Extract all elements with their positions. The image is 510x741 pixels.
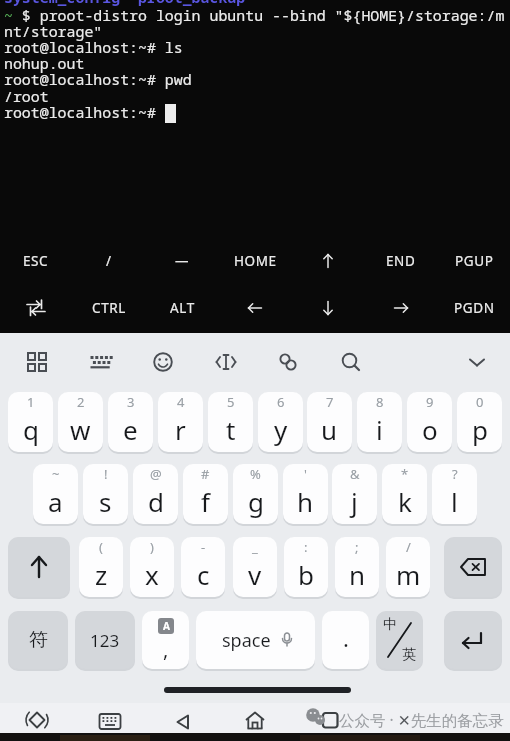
button[interactable]: 1: [8, 392, 53, 452]
button[interactable]: [444, 611, 502, 669]
staticText: v: [248, 557, 262, 592]
button[interactable]: [242, 708, 268, 734]
button[interactable]: 0: [457, 392, 502, 452]
button[interactable]: [463, 348, 491, 376]
button[interactable]: 9: [407, 392, 452, 452]
staticText: %: [250, 465, 261, 483]
button[interactable]: ALT: [146, 285, 218, 331]
button[interactable]: 8: [357, 392, 402, 452]
staticText: e: [123, 412, 138, 447]
button[interactable]: [149, 348, 177, 376]
button[interactable]: !: [83, 464, 128, 524]
button[interactable]: [8, 537, 70, 597]
staticText: x: [145, 557, 159, 592]
button[interactable]: .: [322, 611, 369, 669]
button[interactable]: ―: [146, 238, 218, 284]
staticText: 7: [326, 393, 334, 411]
button[interactable]: HOME: [219, 238, 291, 284]
button[interactable]: [303, 704, 329, 730]
staticText: ?: [452, 465, 458, 483]
button[interactable]: _: [233, 537, 277, 597]
button[interactable]: [97, 708, 123, 734]
button[interactable]: 符: [8, 611, 68, 669]
staticText: q: [23, 412, 39, 447]
button[interactable]: CTRL: [73, 285, 145, 331]
button[interactable]: %: [233, 464, 278, 524]
button[interactable]: [316, 296, 340, 320]
button[interactable]: /: [386, 537, 430, 597]
staticText: *: [401, 465, 409, 483]
button[interactable]: #: [183, 464, 228, 524]
staticText: .: [343, 623, 349, 653]
button[interactable]: END: [365, 238, 437, 284]
button[interactable]: (: [79, 537, 123, 597]
button[interactable]: 3: [108, 392, 153, 452]
staticText: k: [398, 484, 412, 519]
button[interactable]: PGDN: [438, 285, 510, 331]
button[interactable]: &: [332, 464, 377, 524]
button[interactable]: space: [196, 611, 315, 669]
button[interactable]: 6: [258, 392, 303, 452]
button[interactable]: 123: [75, 611, 135, 669]
staticText: 4: [177, 393, 185, 411]
staticText: c: [197, 557, 210, 592]
staticText: 公众号 · ✕先生的备忘录: [339, 709, 504, 730]
staticText: ~ $ proot-distro login ubuntu --bind "${…: [4, 5, 505, 25]
button[interactable]: [24, 296, 48, 320]
button[interactable]: ESC: [0, 238, 72, 284]
staticText: /: [406, 538, 411, 556]
button[interactable]: 5: [208, 392, 253, 452]
staticText: (: [99, 538, 103, 556]
button[interactable]: 4: [158, 392, 203, 452]
staticText: p: [472, 412, 488, 447]
button[interactable]: ): [130, 537, 174, 597]
staticText: 9: [426, 393, 434, 411]
button[interactable]: ?: [432, 464, 477, 524]
button[interactable]: 7: [307, 392, 352, 452]
button[interactable]: [243, 296, 267, 320]
staticText: 3: [127, 393, 135, 411]
staticText: &: [350, 465, 360, 483]
button[interactable]: ;: [335, 537, 379, 597]
button[interactable]: ~: [33, 464, 78, 524]
staticText: PGUP: [455, 252, 494, 270]
button[interactable]: [212, 348, 240, 376]
button[interactable]: [23, 348, 51, 376]
button[interactable]: PGUP: [438, 238, 510, 284]
button[interactable]: A: [142, 611, 189, 669]
staticText: A: [163, 619, 170, 633]
staticText: nohup.out: [4, 53, 85, 73]
staticText: root@localhost:~# ls: [4, 37, 183, 57]
button[interactable]: *: [382, 464, 427, 524]
staticText: 123: [90, 629, 120, 652]
button[interactable]: [274, 348, 302, 376]
button[interactable]: [86, 348, 114, 376]
button[interactable]: 中: [376, 611, 423, 669]
staticText: ': [304, 465, 307, 483]
staticText: 0: [476, 393, 484, 411]
button[interactable]: ': [283, 464, 328, 524]
staticText: :: [304, 538, 308, 556]
staticText: 中: [383, 616, 397, 634]
button[interactable]: [24, 707, 50, 733]
button[interactable]: [337, 348, 365, 376]
button[interactable]: [316, 249, 340, 273]
staticText: y: [274, 412, 288, 447]
button[interactable]: [444, 537, 502, 597]
staticText: ~: [52, 465, 60, 483]
staticText: f: [201, 484, 210, 519]
staticText: 5: [227, 393, 235, 411]
button[interactable]: /: [73, 238, 145, 284]
button[interactable]: :: [284, 537, 328, 597]
button[interactable]: @: [133, 464, 178, 524]
button[interactable]: [317, 707, 343, 733]
button[interactable]: 2: [58, 392, 103, 452]
button[interactable]: [170, 709, 196, 735]
button[interactable]: [389, 296, 413, 320]
staticText: i: [376, 412, 383, 447]
staticText: o: [422, 412, 438, 447]
button[interactable]: -: [181, 537, 225, 597]
staticText: s: [99, 484, 112, 519]
staticText: 8: [376, 393, 384, 411]
staticText: space: [222, 628, 271, 653]
